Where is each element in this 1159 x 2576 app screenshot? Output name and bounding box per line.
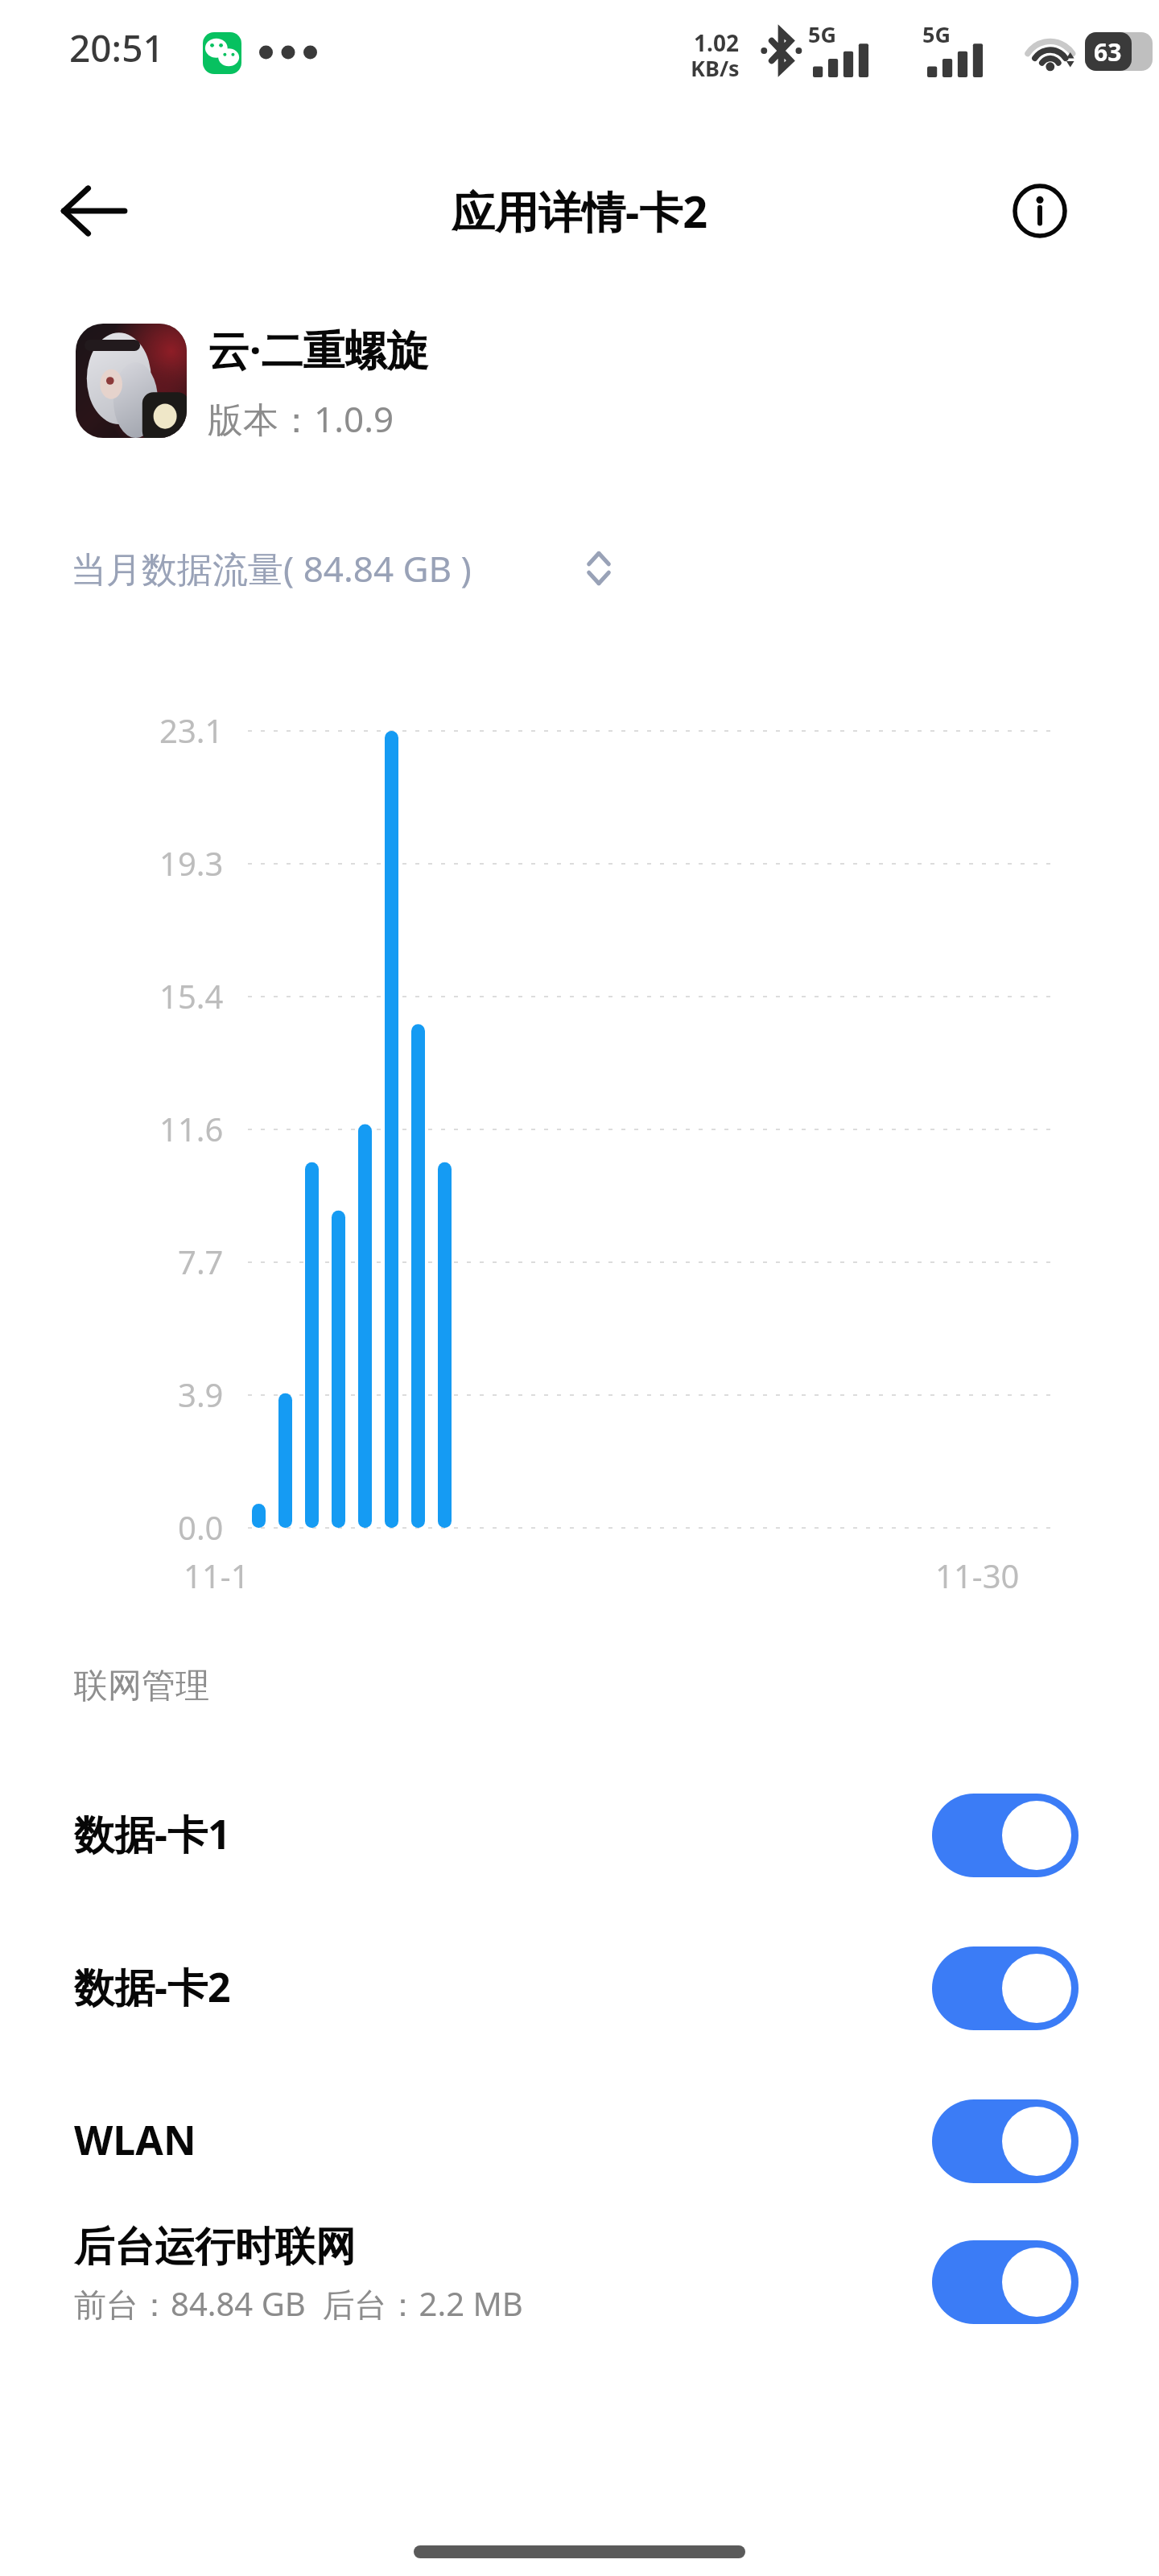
staticText: 应用详情-卡2: [452, 181, 708, 241]
button[interactable]: WLAN: [0, 2077, 1159, 2206]
button[interactable]: 数据-卡2: [0, 1924, 1159, 2053]
button[interactable]: 数据-卡1: [0, 1771, 1159, 1900]
staticText: 7.7: [178, 1240, 224, 1283]
staticText: 5G: [922, 19, 951, 49]
staticText: 前台：84.84 GB 后台：2.2 MB: [74, 2281, 523, 2326]
button[interactable]: 当月数据流量( 84.84 GB ): [60, 535, 623, 599]
staticText: 0.0: [178, 1505, 224, 1549]
staticText: KB/s: [691, 53, 740, 83]
staticText: 数据-卡1: [74, 1806, 231, 1861]
staticText: 3.9: [178, 1373, 224, 1416]
staticText: 5G: [808, 19, 836, 49]
staticText: 11-1: [184, 1554, 250, 1597]
staticText: 23.1: [159, 708, 224, 752]
button[interactable]: Back: [50, 167, 137, 254]
staticText: 11.6: [159, 1107, 224, 1150]
staticText: 20:51: [69, 23, 164, 73]
staticText: 19.3: [159, 841, 224, 885]
staticText: 当月数据流量( 84.84 GB ): [71, 544, 472, 592]
staticText: 数据-卡2: [74, 1959, 231, 2014]
button[interactable]: 后台运行时联网: [0, 2206, 1159, 2359]
staticText: 15.4: [159, 974, 224, 1018]
staticText: 后台运行时联网: [74, 2222, 356, 2273]
staticText: 11-30: [935, 1554, 1020, 1597]
staticText: 联网管理: [74, 1665, 209, 1707]
staticText: 云·二重螺旋: [208, 320, 429, 378]
staticText: WLAN: [74, 2112, 196, 2167]
staticText: 63: [1094, 35, 1122, 68]
staticText: 1.02: [694, 27, 739, 58]
staticText: 版本：1.0.9: [208, 394, 394, 443]
button[interactable]: Info: [1000, 171, 1080, 251]
